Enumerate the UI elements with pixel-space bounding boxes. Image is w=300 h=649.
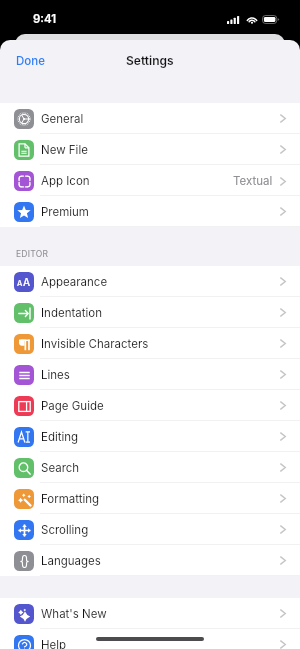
staticText: A	[23, 276, 31, 288]
staticText: Textual	[233, 174, 273, 188]
button[interactable]: A	[0, 266, 300, 297]
staticText: Premium	[41, 205, 89, 219]
staticText: Settings	[126, 53, 174, 68]
button[interactable]: Done	[0, 44, 61, 78]
button[interactable]: Search	[0, 452, 300, 483]
staticText: Formatting	[41, 492, 100, 506]
button[interactable]: Page Guide	[0, 390, 300, 421]
staticText: Done	[16, 54, 45, 68]
button[interactable]: Help	[0, 629, 300, 649]
staticText: General	[41, 112, 84, 126]
staticText: Indentation	[41, 306, 102, 320]
staticText: Editing	[41, 430, 79, 444]
staticText: Lines	[41, 368, 70, 382]
button[interactable]: Indentation	[0, 297, 300, 328]
staticText: What's New	[41, 607, 107, 621]
staticText: Scrolling	[41, 523, 89, 537]
button[interactable]: New File	[0, 134, 300, 165]
staticText: New File	[41, 143, 88, 157]
button[interactable]: App Icon	[0, 165, 300, 196]
button[interactable]: Lines	[0, 359, 300, 390]
button[interactable]: Editing	[0, 421, 300, 452]
staticText: Page Guide	[41, 399, 104, 413]
staticText: 9:41	[33, 12, 57, 26]
staticText: EDITOR	[16, 249, 49, 259]
button[interactable]: Premium	[0, 196, 300, 227]
staticText: Languages	[41, 554, 101, 568]
button[interactable]: Formatting	[0, 483, 300, 514]
staticText: Help	[41, 638, 67, 649]
staticText: Search	[41, 461, 80, 475]
button[interactable]: Invisible Characters	[0, 328, 300, 359]
staticText: Appearance	[41, 275, 108, 289]
staticText: A	[17, 279, 23, 288]
button[interactable]: What's New	[0, 598, 300, 629]
button[interactable]: Scrolling	[0, 514, 300, 545]
button[interactable]: Languages	[0, 545, 300, 576]
button[interactable]: General	[0, 103, 300, 134]
staticText: App Icon	[41, 174, 90, 188]
staticText: Invisible Characters	[41, 337, 149, 351]
